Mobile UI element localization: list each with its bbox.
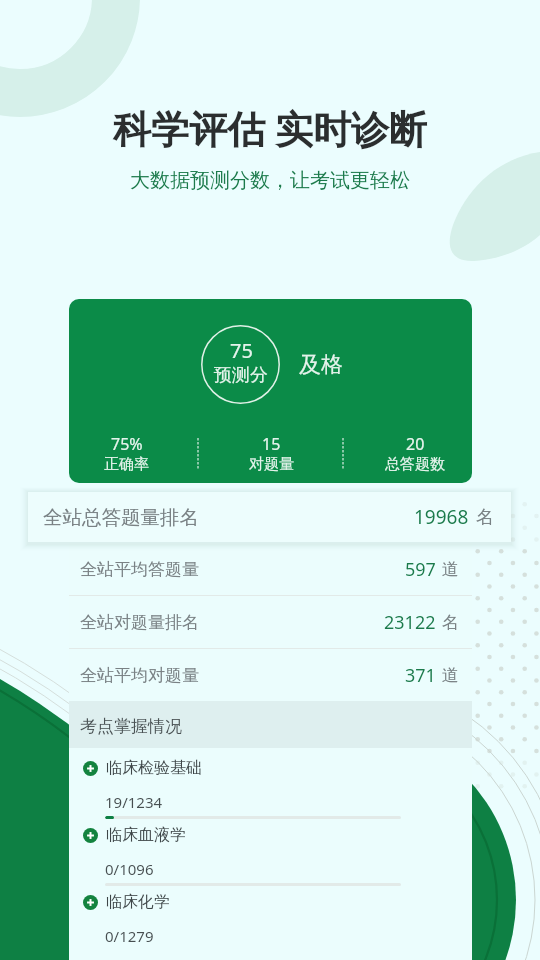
staticText: 75 [230, 337, 253, 364]
staticText: 15 [262, 433, 281, 455]
staticText: 名 [476, 506, 494, 529]
staticText: 19968 [414, 504, 469, 530]
staticText: 大数据预测分数，让考试更轻松 [0, 168, 540, 193]
staticText: 0/1279 [105, 926, 154, 946]
button[interactable]: 临床化学 [69, 882, 472, 949]
staticText: 23122 [384, 610, 436, 635]
staticText: 75% [111, 433, 143, 455]
staticText: 考点掌握情况 [80, 716, 182, 737]
staticText: 20 [406, 433, 425, 455]
staticText: 对题量 [249, 455, 294, 474]
button[interactable]: 全站平均对题量 [69, 649, 472, 701]
button[interactable]: 临床检验基础 [69, 748, 472, 815]
button[interactable]: 全站总答题量排名 [28, 492, 511, 542]
staticText: 临床化学 [106, 892, 170, 912]
staticText: 正确率 [104, 455, 149, 474]
staticText: 总答题数 [385, 455, 445, 474]
staticText: 及格 [299, 351, 343, 379]
staticText: 0/1096 [105, 859, 154, 879]
staticText: 预测分 [214, 364, 268, 387]
staticText: 科学评估 实时诊断 [0, 102, 540, 154]
staticText: 临床检验基础 [106, 758, 202, 778]
staticText: 371 [405, 663, 436, 688]
staticText: 597 [405, 557, 436, 582]
staticText: 道 [442, 559, 459, 580]
staticText: 全站平均对题量 [80, 665, 199, 686]
button[interactable]: 全站平均答题量 [69, 543, 472, 595]
staticText: 全站对题量排名 [80, 612, 199, 633]
staticText: 道 [442, 665, 459, 686]
staticText: 19/1234 [105, 792, 163, 812]
staticText: 全站总答题量排名 [43, 505, 199, 530]
button[interactable]: 临床血液学 [69, 815, 472, 882]
staticText: 全站平均答题量 [80, 559, 199, 580]
staticText: 名 [442, 612, 459, 633]
button[interactable]: 全站对题量排名 [69, 596, 472, 648]
staticText: 临床血液学 [106, 825, 186, 845]
